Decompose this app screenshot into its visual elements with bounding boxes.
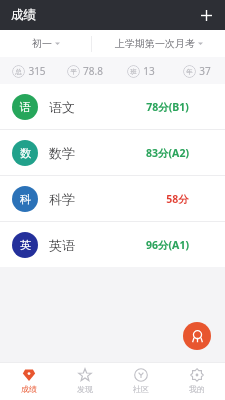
button[interactable]: 社区 — [113, 362, 169, 400]
staticText: 成绩 — [11, 7, 36, 23]
staticText: 英 — [20, 238, 31, 252]
staticText: 78.8 — [83, 64, 103, 78]
button[interactable]: 初一 — [0, 30, 91, 57]
staticText: 英语 — [49, 237, 75, 253]
staticText: 发现 — [77, 384, 93, 394]
staticText: 58分 — [166, 192, 189, 206]
staticText: 成绩 — [21, 384, 37, 394]
staticText: 37 — [199, 64, 211, 78]
staticText: 平 — [70, 68, 77, 76]
staticText: 语 — [20, 100, 31, 114]
button[interactable]: 上学期第一次月考 — [92, 30, 225, 57]
staticText: 上学期第一次月考 — [115, 37, 195, 50]
button[interactable]: 语 — [0, 84, 225, 130]
staticText: 初一 — [32, 37, 52, 50]
staticText: 数 — [20, 146, 31, 160]
button[interactable]: 英 — [0, 222, 225, 267]
button[interactable]: Rank medal — [183, 322, 211, 350]
staticText: 315 — [28, 64, 46, 78]
button[interactable]: 科 — [0, 176, 225, 222]
staticText: 总 — [15, 68, 22, 76]
staticText: 科学 — [49, 191, 75, 207]
button[interactable]: 发现 — [57, 362, 113, 400]
staticText: 语文 — [49, 99, 75, 115]
staticText: 科 — [20, 192, 31, 206]
button[interactable]: Add — [193, 2, 219, 28]
staticText: 年 — [186, 68, 193, 76]
staticText: 83分(A2) — [146, 146, 189, 160]
button[interactable]: 数 — [0, 130, 225, 176]
staticText: 78分(B1) — [146, 100, 189, 114]
button[interactable]: 我的 — [169, 362, 225, 400]
staticText: 班 — [130, 68, 137, 76]
button[interactable]: 成绩 — [0, 362, 57, 400]
staticText: 数学 — [49, 145, 75, 161]
staticText: 社区 — [133, 384, 149, 394]
staticText: 13 — [143, 64, 155, 78]
staticText: 我的 — [189, 384, 205, 394]
staticText: 96分(A1) — [146, 238, 189, 252]
